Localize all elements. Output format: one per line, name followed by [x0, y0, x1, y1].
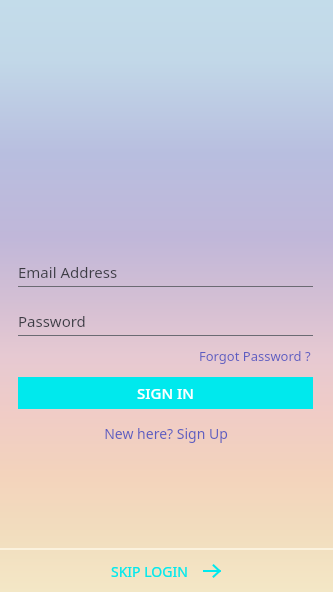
- button[interactable]: Forgot Password ?: [197, 344, 313, 368]
- button[interactable]: Password: [18, 311, 313, 335]
- button[interactable]: SIGN IN: [18, 377, 313, 409]
- staticText: SKIP LOGIN: [111, 562, 188, 581]
- button[interactable]: New here? Sign Up: [100, 421, 232, 446]
- staticText: SIGN IN: [137, 383, 194, 403]
- button[interactable]: Email Address: [18, 262, 313, 286]
- button[interactable]: SKIP LOGIN: [0, 550, 333, 592]
- other: Skip login: [202, 561, 222, 581]
